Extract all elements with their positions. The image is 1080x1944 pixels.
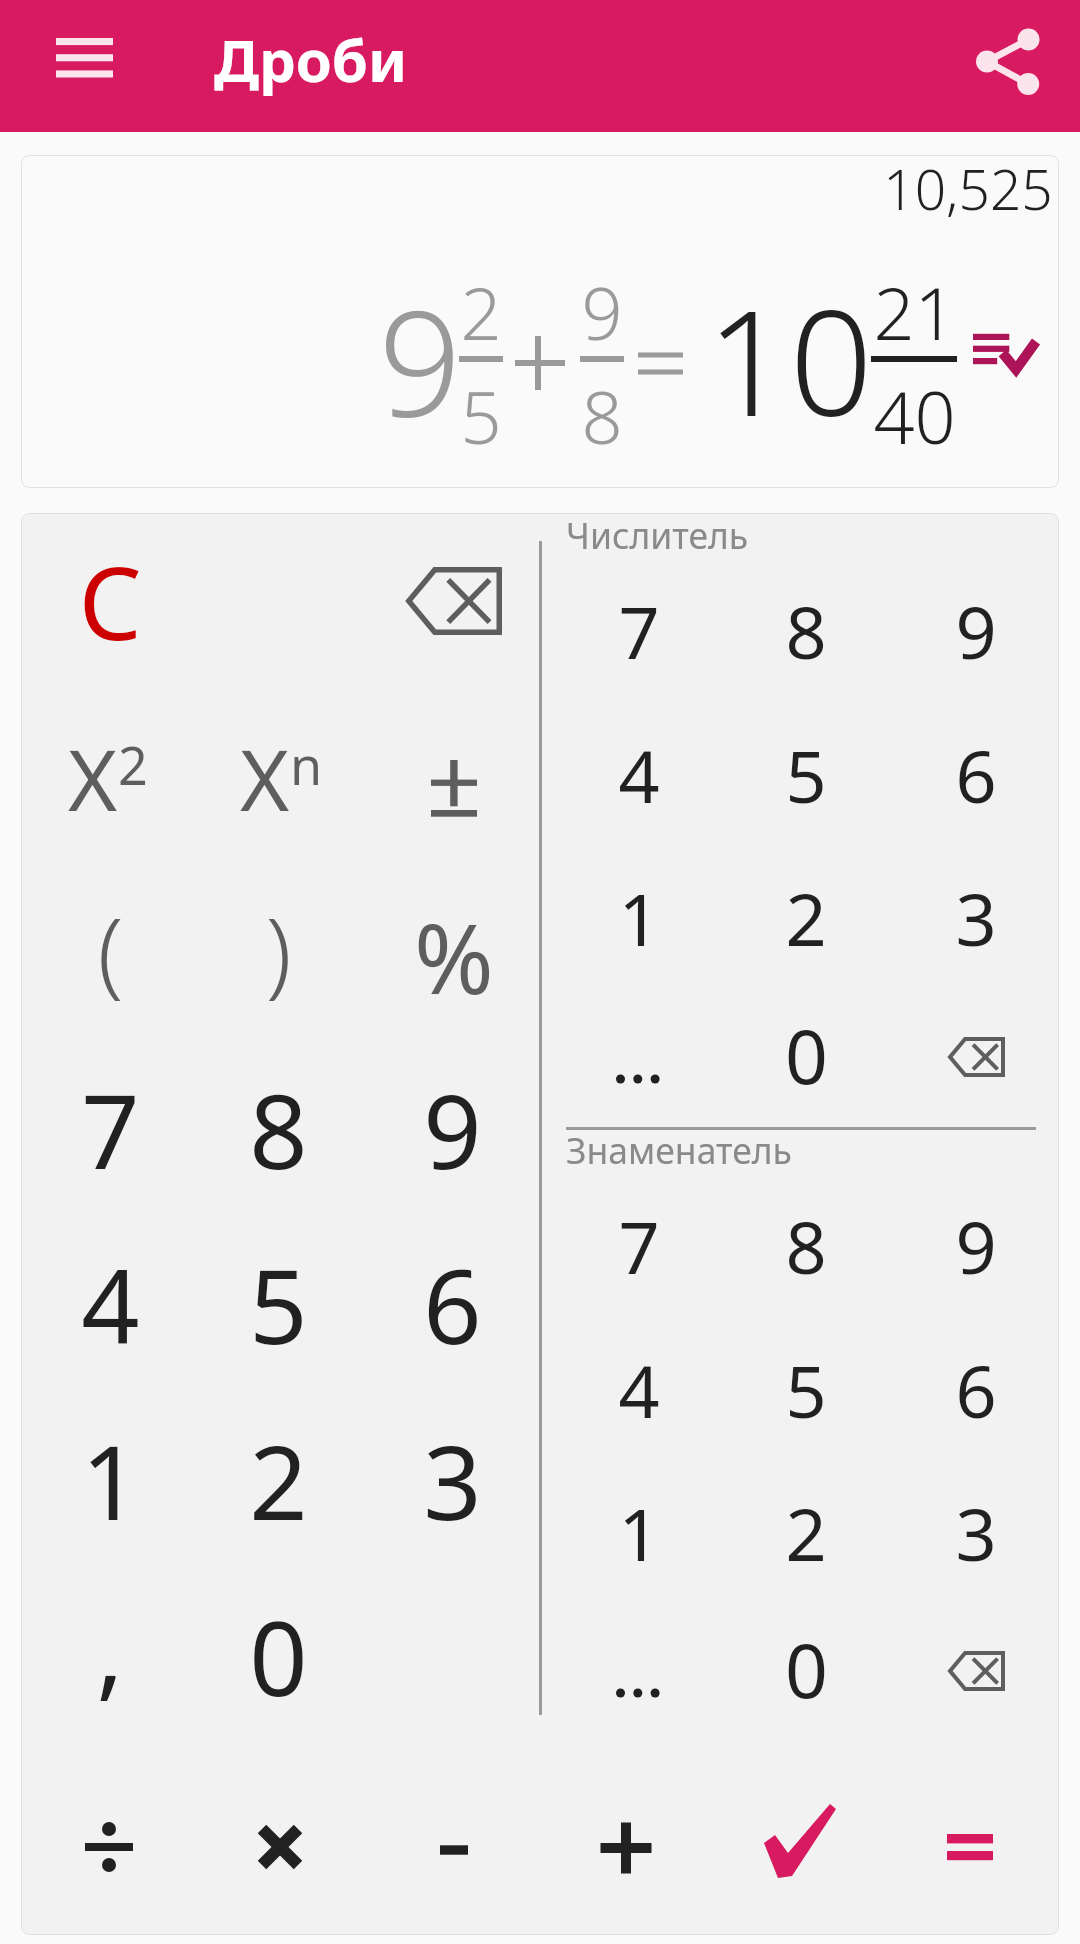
staticText: 6 bbox=[423, 1235, 482, 1374]
button[interactable]: 1 bbox=[559, 1461, 719, 1604]
staticText: 6 bbox=[955, 726, 997, 824]
button[interactable]: 1 bbox=[559, 846, 719, 989]
staticText: Дроби bbox=[214, 20, 408, 99]
staticText: X bbox=[68, 721, 118, 835]
staticText: 4 bbox=[81, 1235, 140, 1374]
button[interactable]: 4 bbox=[559, 703, 719, 846]
button[interactable]: Backspace numerator bbox=[896, 985, 1056, 1128]
button[interactable]: 9 bbox=[896, 559, 1056, 702]
staticText: 40 bbox=[873, 367, 956, 465]
staticText: 7 bbox=[618, 1197, 660, 1295]
staticText: 9 bbox=[955, 1197, 997, 1295]
button[interactable] bbox=[21, 155, 1059, 488]
button[interactable]: Backspace bbox=[369, 516, 539, 686]
staticText: 0 bbox=[249, 1587, 308, 1726]
button[interactable]: Confirm bbox=[715, 1767, 885, 1917]
button[interactable]: 7 bbox=[559, 1174, 719, 1317]
staticText: 1 bbox=[618, 869, 660, 967]
staticText: 7 bbox=[81, 1060, 140, 1199]
button[interactable]: Plus minus bbox=[369, 703, 539, 873]
staticText: 8 bbox=[785, 582, 827, 680]
button[interactable]: 4 bbox=[559, 1318, 719, 1461]
staticText: Числитель bbox=[566, 511, 749, 559]
button[interactable]: Multiply bbox=[195, 1772, 365, 1922]
button[interactable]: 4 bbox=[25, 1218, 195, 1390]
staticText: 9 bbox=[581, 263, 623, 361]
staticText: 2 bbox=[118, 729, 148, 800]
staticText: % bbox=[414, 891, 494, 1022]
staticText: C bbox=[78, 533, 142, 669]
button[interactable]: Plus bbox=[541, 1773, 711, 1923]
button[interactable]: More bbox=[558, 977, 718, 1120]
button[interactable]: Share bbox=[947, 1, 1067, 121]
button[interactable]: , bbox=[25, 1562, 195, 1734]
staticText: 21 bbox=[873, 263, 956, 361]
button[interactable]: 0 bbox=[726, 983, 886, 1126]
staticText: n bbox=[290, 729, 323, 800]
staticText: 5 bbox=[785, 1341, 827, 1439]
button[interactable]: 2 bbox=[726, 846, 886, 989]
staticText: 9 bbox=[378, 260, 462, 459]
staticText: 5 bbox=[460, 367, 502, 465]
staticText: ( bbox=[97, 886, 124, 1014]
button[interactable]: Show details bbox=[950, 305, 1060, 405]
button[interactable]: Minus bbox=[369, 1775, 539, 1925]
button[interactable]: 9 bbox=[896, 1174, 1056, 1317]
staticText: ) bbox=[265, 886, 292, 1014]
button[interactable]: % bbox=[369, 871, 539, 1041]
button[interactable]: 5 bbox=[726, 703, 886, 846]
button[interactable]: 3 bbox=[896, 1461, 1056, 1604]
staticText: 2 bbox=[785, 1484, 827, 1582]
staticText: 4 bbox=[618, 726, 660, 824]
staticText: 2 bbox=[249, 1411, 308, 1550]
staticText: 2 bbox=[460, 263, 502, 361]
staticText: 5 bbox=[785, 726, 827, 824]
button[interactable]: 7 bbox=[559, 559, 719, 702]
button[interactable]: 3 bbox=[367, 1394, 537, 1566]
staticText: 3 bbox=[423, 1411, 482, 1550]
button[interactable]: 6 bbox=[896, 703, 1056, 846]
staticText: 10,525 bbox=[883, 151, 1053, 226]
button[interactable]: 2 bbox=[193, 1394, 363, 1566]
button[interactable]: 5 bbox=[726, 1318, 886, 1461]
button[interactable]: Divide bbox=[24, 1772, 194, 1922]
staticText: 1 bbox=[618, 1484, 660, 1582]
staticText: 3 bbox=[955, 1484, 997, 1582]
staticText: 5 bbox=[249, 1235, 308, 1374]
button[interactable]: 0 bbox=[726, 1597, 886, 1740]
button[interactable]: 5 bbox=[193, 1218, 363, 1390]
staticText: 3 bbox=[955, 869, 997, 967]
staticText: 0 bbox=[785, 1618, 828, 1720]
button[interactable]: X to the power of 2 bbox=[21, 699, 191, 869]
button[interactable]: 0 bbox=[193, 1570, 363, 1742]
button[interactable]: C bbox=[25, 516, 195, 686]
button[interactable]: Equals bbox=[885, 1772, 1055, 1922]
staticText: 1 bbox=[81, 1411, 140, 1550]
staticText: 6 bbox=[955, 1341, 997, 1439]
staticText: Знаменатель bbox=[566, 1126, 792, 1174]
staticText: 7 bbox=[618, 582, 660, 680]
button[interactable]: Menu bbox=[24, 0, 144, 118]
button[interactable]: ) bbox=[193, 865, 363, 1035]
button[interactable]: 8 bbox=[726, 1174, 886, 1317]
button[interactable]: 8 bbox=[726, 559, 886, 702]
button[interactable]: ( bbox=[25, 865, 195, 1035]
button[interactable]: Backspace denominator bbox=[896, 1599, 1056, 1742]
staticText: , bbox=[96, 1579, 124, 1718]
button[interactable]: 6 bbox=[367, 1218, 537, 1390]
staticText: 4 bbox=[618, 1341, 660, 1439]
staticText: 9 bbox=[955, 582, 997, 680]
staticText: 8 bbox=[785, 1197, 827, 1295]
button[interactable]: 9 bbox=[367, 1043, 537, 1215]
staticText: 2 bbox=[785, 869, 827, 967]
button[interactable]: 2 bbox=[726, 1461, 886, 1604]
button[interactable]: X to the power of n bbox=[193, 699, 363, 869]
button[interactable]: 7 bbox=[25, 1043, 195, 1215]
staticText: 10 bbox=[706, 260, 873, 459]
staticText: 8 bbox=[581, 367, 623, 465]
button[interactable]: 1 bbox=[25, 1394, 195, 1566]
button[interactable]: 8 bbox=[193, 1043, 363, 1215]
button[interactable]: More bbox=[558, 1591, 718, 1734]
button[interactable]: 6 bbox=[896, 1318, 1056, 1461]
button[interactable]: 3 bbox=[896, 846, 1056, 989]
